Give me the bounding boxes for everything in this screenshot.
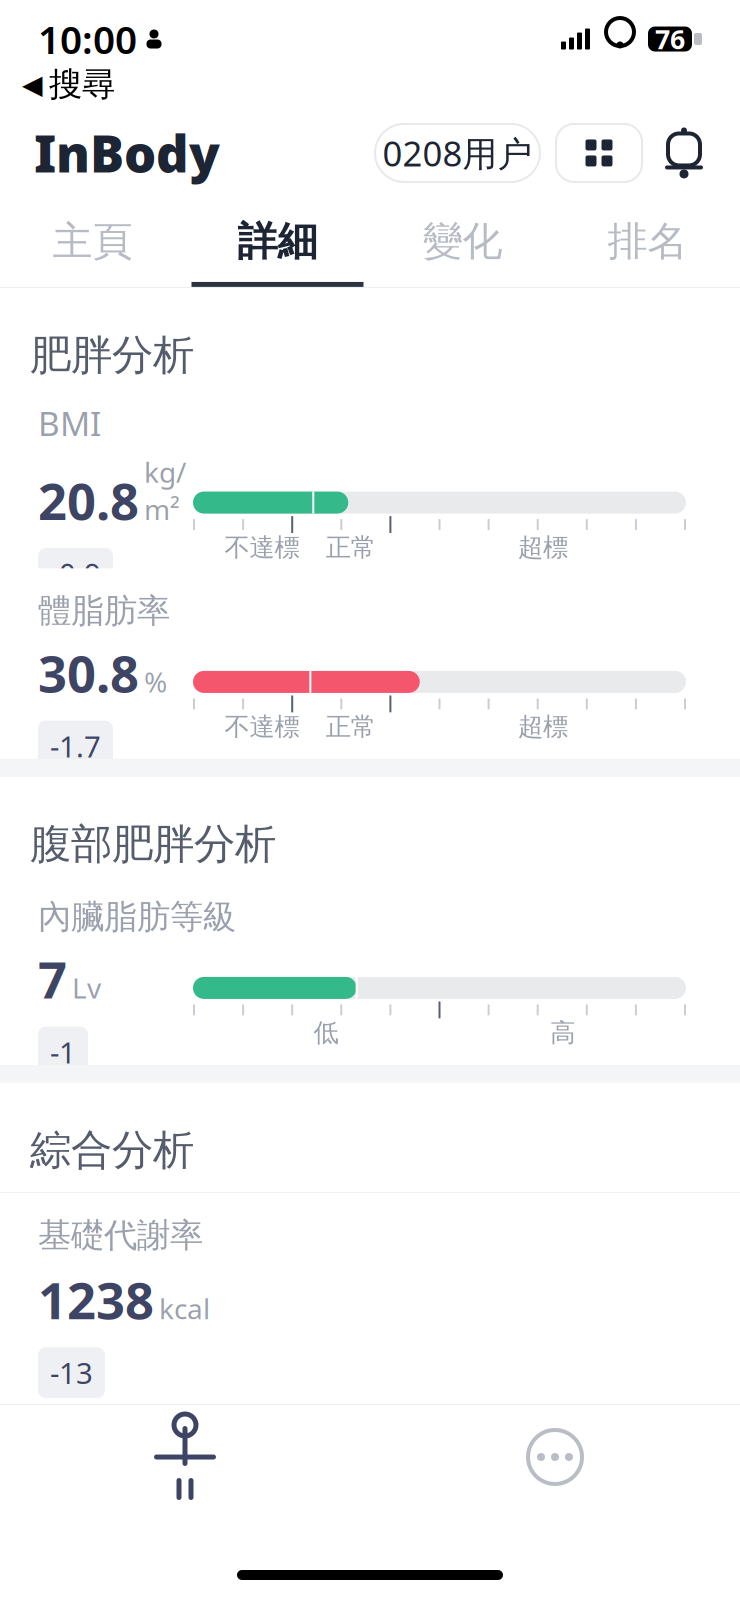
staticText: 排名 [607,217,687,266]
button[interactable]: 詳細 [185,201,370,287]
staticText: 體脂肪率 [38,590,170,631]
staticText: BMI [38,401,101,445]
staticText: 腹部肥胖分析 [30,819,276,870]
staticText: -1 [50,1033,76,1072]
staticText: 0208用户 [382,130,532,176]
staticText: 不達標 [224,711,299,742]
staticText: 1238 [38,1266,154,1333]
staticText: -13 [50,1353,93,1392]
staticText: 高 [550,1017,575,1048]
staticText: kg/m² [144,453,186,528]
staticText: 30.8 [38,639,139,707]
staticText: -1.7 [50,727,101,766]
staticText: % [144,663,167,700]
staticText: 主頁 [52,217,132,266]
button[interactable]: 0208用户 [375,124,540,182]
staticText: -0.9 [50,554,101,593]
button[interactable]: 體脂肪率 [0,568,740,772]
staticText: 變化 [422,217,502,266]
staticText: 20.8 [38,467,139,534]
staticText: InBody [34,119,220,187]
button[interactable]: BMI [0,379,740,599]
staticText: ◀ [22,69,43,100]
staticText: 綜合分析 [30,1125,194,1176]
button[interactable]: 變化 [370,201,555,287]
button[interactable]: 掃描 QR Code [540,124,642,182]
staticText: 詳細 [237,217,317,266]
staticText: 10:00 [38,13,137,65]
staticText: 正常 [326,532,376,563]
button[interactable]: 通知 [642,122,740,184]
button[interactable]: 身體組成 [125,1409,245,1505]
staticText: 搜尋 [49,64,115,105]
staticText: 超標 [518,711,568,742]
button[interactable]: 更多 [495,1409,615,1505]
staticText: kcal [159,1290,210,1327]
staticText: 肥胖分析 [30,330,194,381]
staticText: 低 [314,1017,339,1048]
button[interactable]: 排名 [555,201,740,287]
staticText: 7 [38,945,67,1013]
button[interactable]: 內臟脂肪等級 [0,874,740,1078]
button[interactable]: 主頁 [0,201,185,287]
staticText: Lv [72,969,101,1006]
staticText: 內臟脂肪等級 [38,896,236,937]
staticText: 超標 [518,532,568,563]
staticText: 76 [655,21,685,57]
staticText: 正常 [326,711,376,742]
staticText: 基礎代謝率 [38,1215,203,1256]
staticText: 不達標 [224,532,299,563]
button[interactable]: 基礎代謝率 [0,1193,740,1398]
